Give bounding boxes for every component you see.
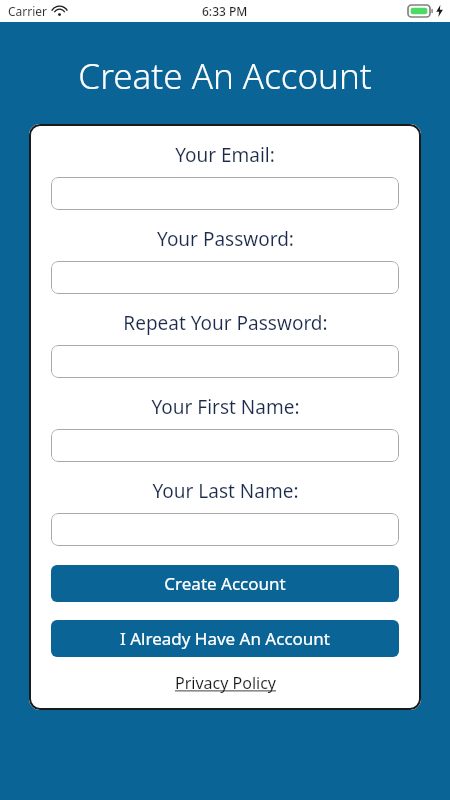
button[interactable]: Privacy Policy bbox=[169, 670, 282, 696]
staticText: Create An Account bbox=[78, 52, 372, 100]
staticText: Your First Name: bbox=[151, 394, 300, 420]
staticText: Privacy Policy bbox=[175, 672, 276, 694]
staticText: Repeat Your Password: bbox=[123, 310, 328, 336]
staticText: Your Last Name: bbox=[152, 478, 299, 504]
button[interactable]: Repeat Your Password: bbox=[51, 345, 399, 378]
staticText: Your Password: bbox=[157, 226, 294, 252]
staticText: Create Account bbox=[164, 572, 286, 595]
button[interactable]: Create Account bbox=[51, 565, 399, 602]
button[interactable]: Your Email: bbox=[51, 177, 399, 210]
staticText: 6:33 PM bbox=[202, 3, 248, 19]
button[interactable]: I Already Have An Account bbox=[51, 620, 399, 657]
staticText: Your Email: bbox=[175, 142, 275, 168]
staticText: Carrier bbox=[8, 3, 48, 19]
button[interactable]: Your Password: bbox=[51, 261, 399, 294]
button[interactable]: Your Last Name: bbox=[51, 513, 399, 546]
staticText: I Already Have An Account bbox=[120, 627, 330, 650]
button[interactable]: Your First Name: bbox=[51, 429, 399, 462]
